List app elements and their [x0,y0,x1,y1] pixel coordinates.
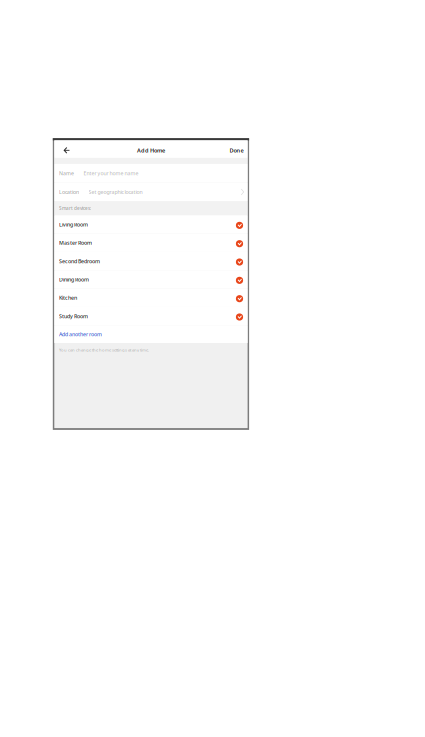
button[interactable]: Living Room [54,215,248,234]
button[interactable]: Add another room [54,325,248,343]
staticText: Add Home [137,146,165,154]
staticText: Dining Room [59,276,89,283]
staticText: Enter your home name [84,170,139,177]
button[interactable]: Master Room [54,234,248,252]
button[interactable]: Back [57,140,75,158]
staticText: Name [59,170,74,177]
staticText: Location [59,188,79,195]
staticText: Smart devices: [59,205,91,211]
button[interactable]: Kitchen [54,289,248,307]
staticText: You can change the home settings at any … [59,347,149,353]
button[interactable]: Location [54,183,248,201]
button[interactable]: Done [221,140,243,158]
button[interactable]: Name [54,164,248,183]
button[interactable]: Dining Room [54,270,248,289]
staticText: Master Room [59,239,92,246]
staticText: Set geographic location [89,188,143,195]
staticText: Done [229,146,243,154]
staticText: Living Room [59,221,88,228]
button[interactable]: Second Bedroom [54,252,248,270]
staticText: Second Bedroom [59,257,100,265]
staticText: Add another room [59,331,102,338]
staticText: Kitchen [59,294,77,301]
staticText: Study Room [59,312,88,320]
button[interactable]: Study Room [54,307,248,325]
